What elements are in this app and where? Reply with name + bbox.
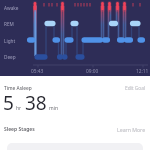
staticText: Awake — [4, 5, 19, 11]
staticText: 12:11 — [136, 68, 149, 75]
staticText: 38 — [25, 90, 47, 116]
staticText: Edit Goal — [125, 85, 146, 92]
staticText: 09:00 — [86, 68, 99, 75]
button[interactable]: Edit Goal — [125, 85, 146, 92]
staticText: Deep — [4, 54, 16, 60]
staticText: min — [49, 105, 59, 112]
button[interactable]: Awake — [0, 0, 150, 76]
staticText: hr — [16, 105, 22, 112]
staticText: Learn More — [117, 126, 146, 133]
staticText: Sleep Stages — [4, 126, 35, 133]
staticText: 05:43 — [31, 68, 44, 75]
staticText: 5 — [3, 90, 14, 116]
staticText: Time Asleep — [4, 85, 32, 92]
staticText: Light — [4, 38, 16, 44]
staticText: REM — [4, 21, 14, 27]
button[interactable]: Learn More — [117, 126, 146, 133]
